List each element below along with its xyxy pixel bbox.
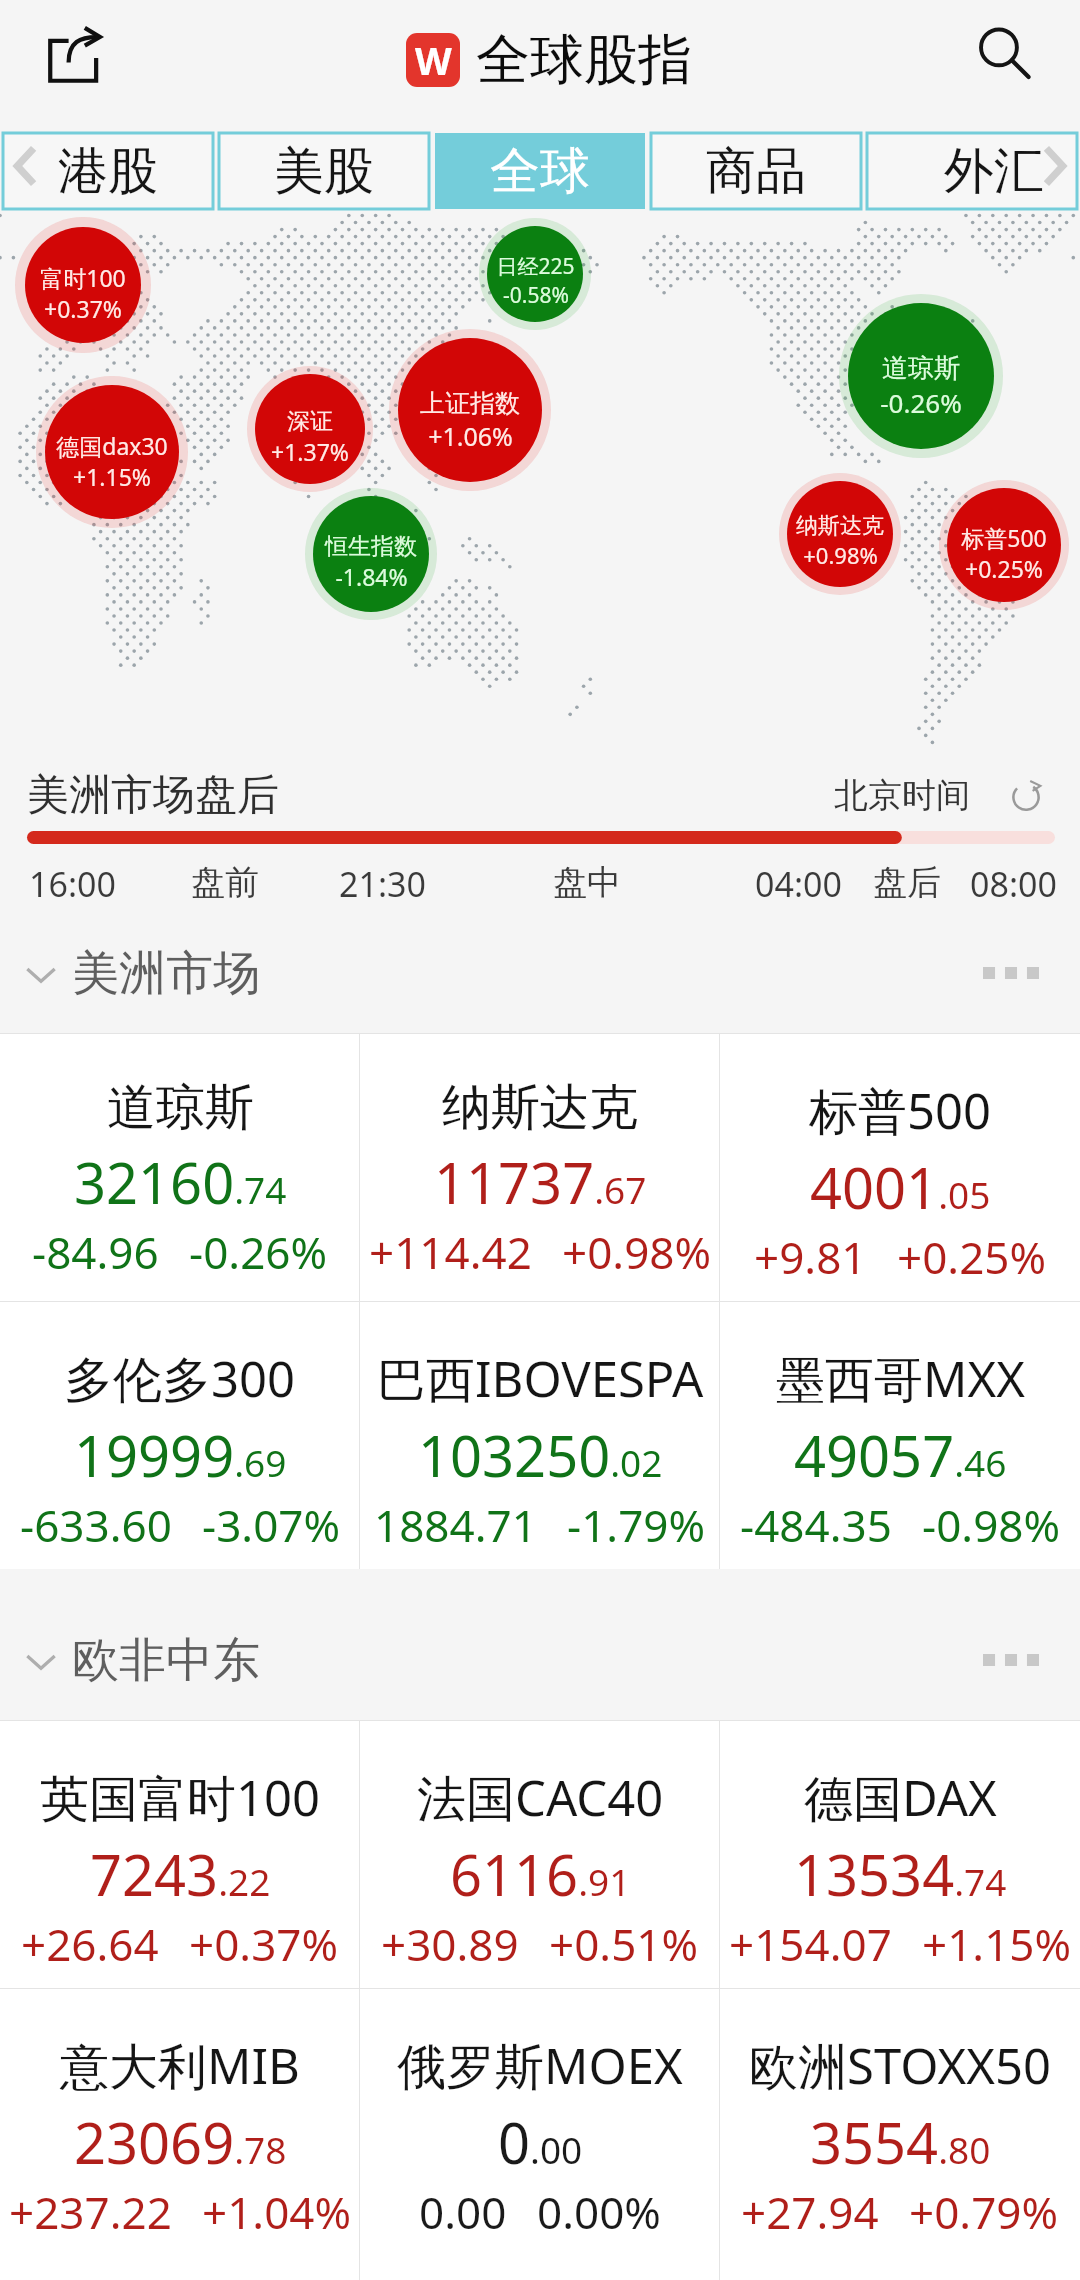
button[interactable]: 美股 — [219, 133, 429, 209]
staticText: 4001.05 — [810, 1149, 991, 1225]
staticText: 盘前 — [191, 861, 259, 904]
button[interactable]: Refresh — [1006, 776, 1046, 816]
button[interactable]: Share — [34, 17, 114, 97]
staticText: 北京时间 — [834, 774, 970, 817]
button[interactable]: 道琼斯 — [839, 294, 1003, 458]
staticText: 纳斯达克 — [442, 1077, 638, 1139]
staticText: 盘中 — [553, 861, 621, 904]
button[interactable]: 俄罗斯MOEX — [360, 1989, 720, 2280]
staticText: 3554.80 — [810, 2104, 991, 2180]
staticText: 欧洲STOXX50 — [749, 2032, 1051, 2099]
staticText: 标普500 — [809, 1077, 992, 1144]
button[interactable]: 深证 — [247, 366, 373, 492]
button[interactable]: 全球 — [435, 133, 645, 209]
staticText: 墨西哥MXX — [776, 1345, 1025, 1412]
staticText: 深证 — [287, 407, 333, 436]
staticText: 04:00 — [755, 861, 842, 907]
staticText: 意大利MIB — [60, 2032, 300, 2099]
button[interactable]: 标普500 — [939, 480, 1069, 610]
staticText: -84.96 — [32, 1222, 159, 1282]
staticText: +0.98% — [562, 1222, 712, 1282]
staticText: 1884.71 — [374, 1495, 537, 1555]
staticText: +30.89 — [381, 1914, 519, 1974]
staticText: -484.35 — [740, 1495, 892, 1555]
staticText: 21:30 — [339, 861, 426, 907]
staticText: -1.84% — [335, 561, 408, 592]
staticText: 08:00 — [970, 861, 1057, 907]
staticText: 0.00% — [537, 2182, 661, 2242]
staticText: 道琼斯 — [107, 1077, 254, 1139]
staticText: 多伦多300 — [64, 1345, 296, 1412]
staticText: 全球股指 — [476, 26, 692, 94]
staticText: 全球 — [490, 140, 590, 203]
staticText: 商品 — [706, 140, 806, 203]
button[interactable]: 欧非中东 — [22, 1631, 260, 1690]
staticText: 23069.78 — [74, 2104, 287, 2180]
staticText: 外汇 — [944, 140, 1044, 203]
staticText: 巴西IBOVESPA — [377, 1345, 704, 1412]
staticText: -3.07% — [202, 1495, 341, 1555]
staticText: 13534.74 — [794, 1836, 1007, 1912]
staticText: 英国富时100 — [40, 1764, 321, 1831]
button[interactable]: 商品 — [651, 133, 861, 209]
staticText: 7243.22 — [90, 1836, 271, 1912]
staticText: +26.64 — [21, 1914, 159, 1974]
staticText: 0.00 — [498, 2104, 583, 2180]
staticText: 标普500 — [961, 522, 1047, 553]
staticText: 港股 — [58, 140, 158, 203]
staticText: 德国DAX — [804, 1764, 997, 1831]
button[interactable]: 欧洲STOXX50 — [720, 1989, 1080, 2280]
staticText: +0.37% — [189, 1914, 339, 1974]
button[interactable]: 法国CAC40 — [360, 1721, 720, 1988]
button[interactable]: 墨西哥MXX — [720, 1302, 1080, 1569]
staticText: W — [415, 34, 452, 86]
button[interactable]: More options — [968, 949, 1054, 997]
staticText: -0.58% — [503, 281, 569, 310]
button[interactable]: Search — [964, 13, 1044, 93]
staticText: 6116.91 — [450, 1836, 631, 1912]
button[interactable]: 巴西IBOVESPA — [360, 1302, 720, 1569]
staticText: +114.42 — [369, 1222, 532, 1282]
staticText: 16:00 — [29, 861, 116, 907]
staticText: +0.98% — [803, 540, 878, 570]
button[interactable]: 道琼斯 — [0, 1034, 360, 1301]
button[interactable]: 标普500 — [720, 1034, 1080, 1301]
button[interactable]: 富时100 — [15, 217, 151, 353]
staticText: -1.79% — [567, 1495, 706, 1555]
staticText: 上证指数 — [420, 388, 520, 419]
staticText: +1.15% — [922, 1914, 1072, 1974]
staticText: +0.51% — [549, 1914, 699, 1974]
staticText: -0.98% — [922, 1495, 1061, 1555]
button[interactable]: 外汇 — [867, 133, 1077, 209]
button[interactable]: 意大利MIB — [0, 1989, 360, 2280]
staticText: +237.22 — [9, 2182, 172, 2242]
button[interactable]: 多伦多300 — [0, 1302, 360, 1569]
staticText: +1.04% — [202, 2182, 352, 2242]
staticText: 32160.74 — [74, 1144, 287, 1220]
button[interactable]: 德国DAX — [720, 1721, 1080, 1988]
staticText: -0.26% — [189, 1222, 328, 1282]
button[interactable]: 上证指数 — [389, 329, 551, 491]
button[interactable]: More options — [968, 1636, 1054, 1684]
staticText: +154.07 — [729, 1914, 892, 1974]
button[interactable]: 港股 — [3, 133, 213, 209]
staticText: 恒生指数 — [325, 532, 417, 561]
staticText: 11737.67 — [434, 1144, 647, 1220]
staticText: 美洲市场盘后 — [27, 769, 279, 822]
button[interactable]: 纳斯达克 — [779, 473, 901, 595]
button[interactable]: 日经225 — [479, 218, 591, 330]
button[interactable]: 恒生指数 — [305, 488, 437, 620]
staticText: +27.94 — [741, 2182, 879, 2242]
button[interactable]: 英国富时100 — [0, 1721, 360, 1988]
staticText: +0.25% — [897, 1227, 1047, 1287]
staticText: 盘后 — [873, 861, 941, 904]
staticText: +0.79% — [909, 2182, 1059, 2242]
staticText: 19999.69 — [74, 1417, 287, 1493]
staticText: 欧非中东 — [72, 1631, 260, 1690]
staticText: +1.06% — [428, 419, 513, 453]
staticText: 法国CAC40 — [417, 1764, 664, 1831]
button[interactable]: 纳斯达克 — [360, 1034, 720, 1301]
button[interactable]: 美洲市场 — [22, 944, 260, 1003]
button[interactable]: 德国dax30 — [36, 376, 188, 528]
staticText: +1.15% — [73, 461, 151, 492]
